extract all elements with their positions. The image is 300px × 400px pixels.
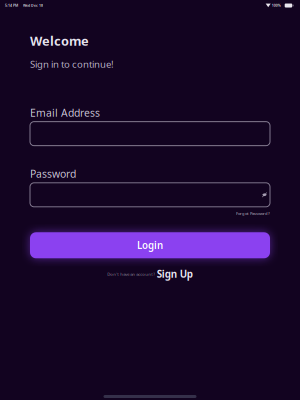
staticText: Sign in to continue! xyxy=(30,57,114,70)
staticText: Wed Dec 18 xyxy=(23,3,43,8)
staticText: Forgot Password? xyxy=(236,211,270,216)
button[interactable]: Password xyxy=(30,183,270,207)
button[interactable]: Email Address xyxy=(30,122,270,146)
staticText: Welcome xyxy=(30,32,89,49)
staticText: 5:14 PM xyxy=(5,3,18,8)
staticText: Sign Up xyxy=(157,267,193,281)
staticText: 100% xyxy=(272,3,281,8)
staticText: Login xyxy=(137,239,163,252)
staticText: Don't have an account? xyxy=(107,271,155,277)
staticText: Email Address xyxy=(30,105,100,120)
staticText: Password xyxy=(30,167,76,181)
button[interactable]: Login xyxy=(30,232,270,258)
button[interactable]: Sign Up xyxy=(157,267,193,281)
button[interactable]: Show password xyxy=(262,192,267,197)
button[interactable]: Forgot Password? xyxy=(236,211,270,216)
